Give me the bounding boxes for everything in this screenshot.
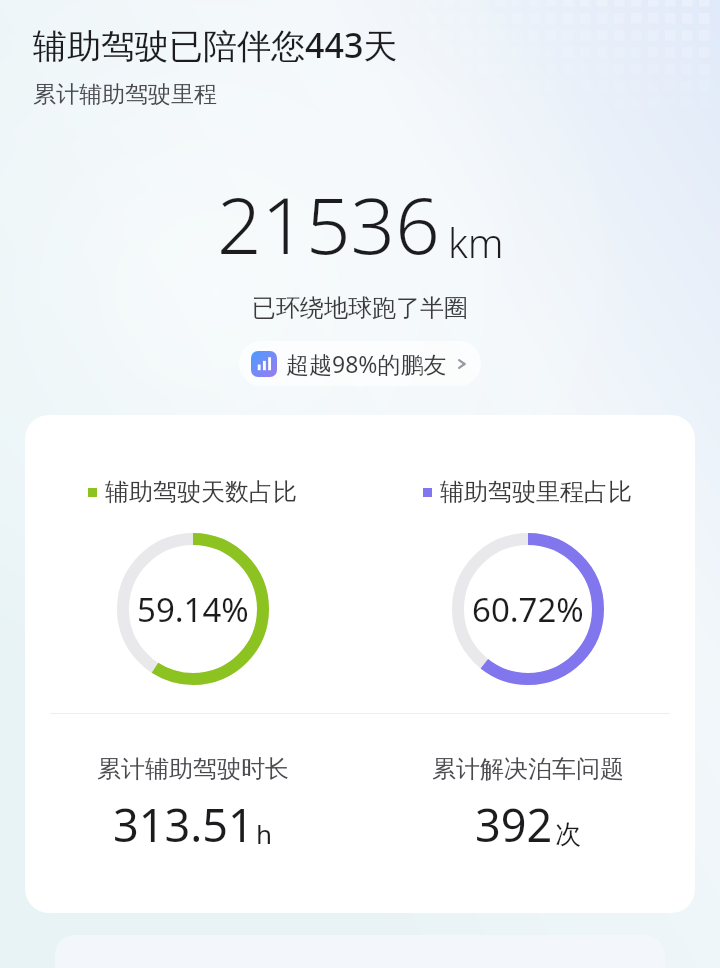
staticText: 392 xyxy=(475,794,553,855)
staticText: 313.51 xyxy=(113,794,254,855)
staticText: 辅助驾驶天数占比 xyxy=(105,477,297,507)
staticText: 累计解决泊车问题 xyxy=(432,754,624,784)
staticText: 21536 xyxy=(217,171,440,277)
button[interactable]: 累计辅助驾驶时长 xyxy=(25,754,360,855)
staticText: 累计辅助驾驶时长 xyxy=(97,754,289,784)
staticText: km xyxy=(448,215,504,269)
staticText: 超越98%的鹏友 xyxy=(286,348,447,379)
staticText: 辅助驾驶里程占比 xyxy=(440,477,632,507)
staticText: 59.14% xyxy=(137,587,249,632)
staticText: h xyxy=(256,816,273,851)
staticText: 累计辅助驾驶里程 xyxy=(33,80,217,109)
staticText: 次 xyxy=(555,818,581,851)
staticText: 辅助驾驶已陪伴您443天 xyxy=(33,22,398,68)
button[interactable]: 累计解决泊车问题 xyxy=(360,754,695,855)
button[interactable]: 超越98%的鹏友 xyxy=(239,341,481,386)
staticText: 已环绕地球跑了半圈 xyxy=(0,293,720,323)
staticText: 60.72% xyxy=(472,587,584,632)
